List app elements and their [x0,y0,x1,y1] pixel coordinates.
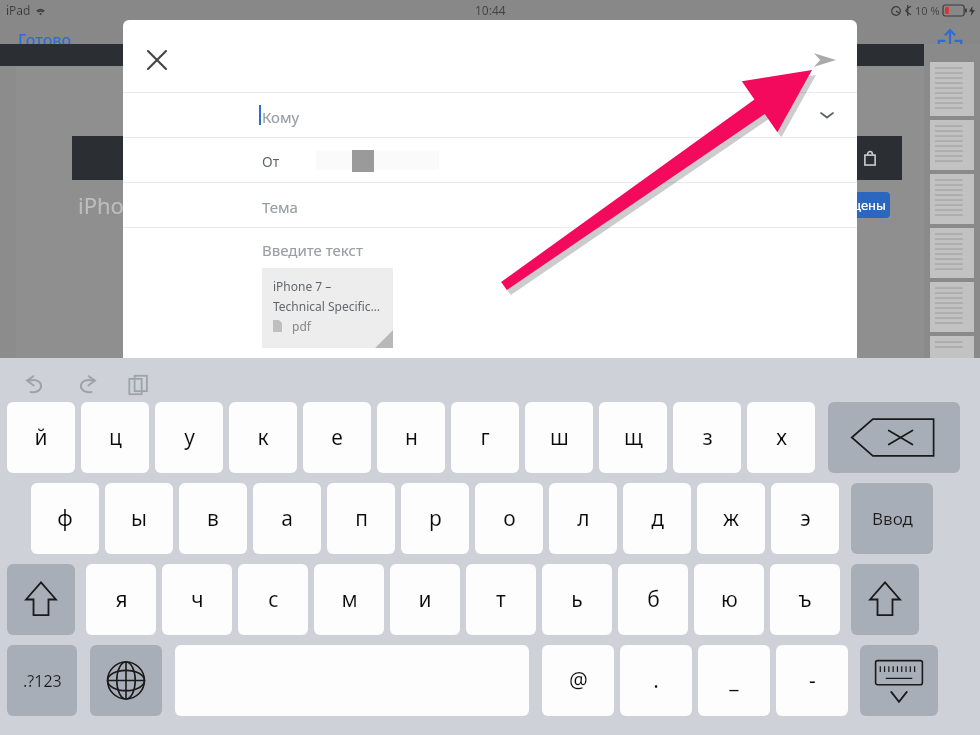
staticText: Введите текст [262,240,363,260]
button[interactable]: ь [542,564,612,635]
button[interactable]: Send [801,36,849,84]
staticText: т [496,585,506,614]
button[interactable] [930,120,974,170]
staticText: п [355,504,368,533]
button[interactable]: е [303,402,371,473]
staticText: .?123 [23,670,62,692]
button[interactable]: @ [542,645,614,716]
button[interactable]: iPhone 7 – [262,268,393,348]
button[interactable]: з [673,402,741,473]
button[interactable]: Key [828,402,960,473]
button[interactable]: у [155,402,223,473]
button[interactable]: п [327,483,395,554]
button[interactable]: Введите текст [123,228,857,268]
button[interactable]: о [475,483,543,554]
button[interactable]: Key [7,564,75,635]
button[interactable]: б [618,564,688,635]
staticText: ш [550,423,569,452]
button[interactable]: ъ [770,564,840,635]
staticText: pdf [292,318,311,334]
button[interactable] [930,336,974,358]
staticText: 10:44 [475,2,506,18]
button[interactable]: Redo [72,370,102,400]
button[interactable]: э [771,483,839,554]
staticText: л [577,504,590,533]
button[interactable]: Expand recipients [805,93,849,137]
button[interactable]: Ввод [851,483,933,554]
staticText: м [341,585,358,614]
staticText: э [800,504,811,533]
staticText: От [262,152,280,171]
button[interactable]: - [776,645,848,716]
button[interactable] [930,228,974,278]
button[interactable]: й [7,402,75,473]
button[interactable]: цены [830,192,890,218]
button[interactable]: ц [81,402,149,473]
staticText: iPhone 7 – [273,278,332,294]
button[interactable] [930,174,974,224]
staticText: ь [571,585,583,614]
button[interactable]: ы [105,483,173,554]
button[interactable]: г [451,402,519,473]
staticText: я [115,585,128,614]
button[interactable]: Готово [18,29,72,51]
button[interactable]: с [238,564,308,635]
staticText: Тема [262,197,298,217]
button[interactable]: в [179,483,247,554]
button[interactable]: н [377,402,445,473]
staticText: р [429,504,442,533]
button[interactable]: Undo [20,370,50,400]
button[interactable]: .?123 [7,645,77,716]
staticText: с [268,585,279,614]
button[interactable]: к [229,402,297,473]
button[interactable]: ш [525,402,593,473]
staticText: й [34,423,48,452]
staticText: iPhone 7 [78,190,169,220]
staticText: з [702,423,713,452]
button[interactable]: Key [90,645,162,716]
staticText: а [281,504,293,533]
button[interactable]: ю [694,564,764,635]
button[interactable]: м [314,564,384,635]
staticText: цены [853,196,886,214]
button[interactable]: л [549,483,617,554]
button[interactable]: ч [162,564,232,635]
button[interactable]: и [390,564,460,635]
button[interactable]: д [623,483,691,554]
button[interactable]: х [747,402,815,473]
staticText: . [653,666,659,695]
button[interactable]: а [253,483,321,554]
staticText: Ввод [872,507,913,530]
staticText: ч [191,585,204,614]
staticText: @ [569,666,588,695]
staticText: к [257,423,269,452]
staticText: б [647,585,660,614]
staticText: о [503,504,516,533]
button[interactable]: Key [860,645,938,716]
staticText: - [809,666,816,695]
button[interactable]: щ [599,402,667,473]
button[interactable]: Paste [124,370,154,400]
staticText: ю [721,585,738,614]
staticText: в [207,504,219,533]
button[interactable]: _ [698,645,770,716]
staticText: ф [57,504,73,533]
staticText: Technical Specific… [273,298,381,314]
button[interactable]: т [466,564,536,635]
staticText: _ [729,666,739,695]
button[interactable]: р [401,483,469,554]
button[interactable] [930,62,974,116]
button[interactable] [930,282,974,332]
staticText: iPad [6,2,31,18]
button[interactable]: ф [31,483,99,554]
button[interactable]: Close [133,36,181,84]
button[interactable]: Share [930,24,970,64]
button[interactable]: ж [697,483,765,554]
button[interactable]: От [123,138,857,182]
button[interactable]: Key [851,564,919,635]
button[interactable]: . [620,645,692,716]
staticText: ж [723,504,739,533]
button[interactable]: я [86,564,156,635]
button[interactable]: Тема [123,183,857,227]
